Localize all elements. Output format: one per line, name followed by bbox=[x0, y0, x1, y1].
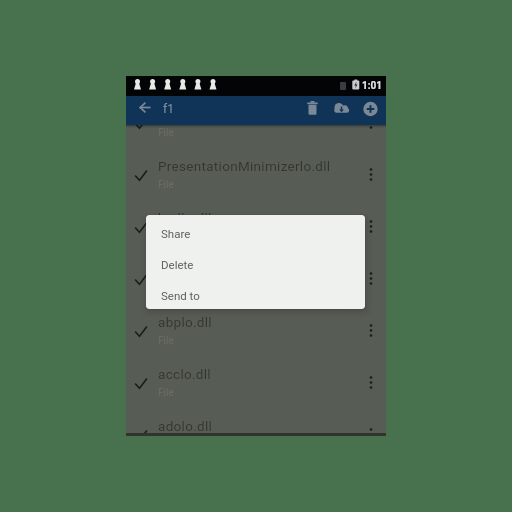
staticText: f1 bbox=[163, 102, 174, 116]
button[interactable]: bdplo.dll bbox=[126, 254, 386, 306]
button[interactable]: acclo.dll bbox=[126, 358, 386, 410]
staticText: File bbox=[158, 335, 174, 347]
staticText: 1:01 bbox=[362, 80, 383, 92]
button[interactable]: xxxlo.dll bbox=[126, 125, 386, 150]
button[interactable] bbox=[301, 97, 324, 120]
staticText: Delete bbox=[161, 258, 194, 271]
staticText: File bbox=[158, 387, 174, 399]
staticText: Send to bbox=[161, 289, 200, 302]
button[interactable]: Share bbox=[146, 218, 365, 249]
staticText: acclo.dll bbox=[158, 366, 211, 382]
button[interactable]: bcdlo.dll bbox=[126, 202, 386, 254]
button[interactable]: abplo.dll bbox=[126, 306, 386, 358]
staticText: File bbox=[158, 127, 174, 139]
staticText: bdplo.dll bbox=[158, 262, 213, 278]
button[interactable]: Delete bbox=[146, 249, 365, 280]
staticText: bcdlo.dll bbox=[158, 210, 212, 226]
staticText: abplo.dll bbox=[158, 314, 212, 330]
staticText: File bbox=[158, 231, 174, 243]
staticText: PresentationMinimizerlo.dll bbox=[158, 158, 331, 174]
button[interactable] bbox=[136, 100, 150, 114]
staticText: File bbox=[158, 283, 174, 295]
staticText: File bbox=[158, 179, 174, 191]
button[interactable]: PresentationMinimizerlo.dll bbox=[126, 150, 386, 202]
staticText: Share bbox=[161, 227, 191, 240]
button[interactable]: Send to bbox=[146, 280, 365, 309]
staticText: adolo.dll bbox=[158, 418, 213, 434]
button[interactable] bbox=[330, 97, 353, 120]
button[interactable] bbox=[359, 97, 382, 120]
button[interactable]: adolo.dll bbox=[126, 410, 386, 436]
